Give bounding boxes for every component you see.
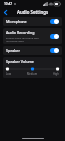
staticText: Audio Settings bbox=[17, 9, 49, 15]
button[interactable]: Toggle bbox=[50, 19, 59, 24]
staticText: Medium bbox=[27, 72, 38, 76]
staticText: High bbox=[53, 72, 59, 76]
button[interactable]: Back bbox=[1, 8, 9, 16]
button[interactable]: Speaker bbox=[3, 46, 62, 55]
button[interactable]: Toggle bbox=[50, 34, 59, 39]
button[interactable]: Speaker volume slider bbox=[6, 67, 59, 71]
button[interactable]: Audio Recording bbox=[3, 28, 62, 44]
staticText: Low bbox=[6, 72, 11, 76]
staticText: Speaker bbox=[6, 48, 20, 53]
staticText: Enable audio recording with incoming vid… bbox=[6, 36, 39, 42]
staticText: Audio Recording bbox=[6, 30, 35, 35]
button[interactable]: Microphone bbox=[3, 17, 62, 26]
staticText: 10:47 bbox=[4, 2, 13, 6]
button[interactable]: Speaker Volume bbox=[3, 57, 62, 78]
staticText: Microphone bbox=[6, 19, 27, 24]
button[interactable]: Toggle bbox=[50, 48, 59, 53]
staticText: Speaker Volume bbox=[6, 59, 34, 64]
